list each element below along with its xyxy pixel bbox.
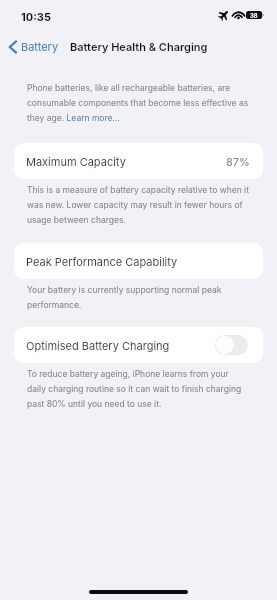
staticText: Battery Health & Charging [70, 40, 208, 53]
staticText: Your battery is currently supporting nor… [27, 281, 249, 311]
button[interactable]: Optimised Battery Charging toggle [215, 335, 248, 355]
staticText: Peak Performance Capability [26, 255, 178, 268]
staticText: Phone batteries, like all rechargeable b… [27, 79, 249, 124]
button[interactable]: Battery [0, 36, 65, 56]
staticText: Maximum Capacity [26, 155, 126, 168]
staticText: This is a measure of battery capacity re… [27, 181, 249, 226]
staticText: Optimised Battery Charging [26, 339, 170, 352]
staticText: To reduce battery ageing, iPhone learns … [27, 365, 249, 410]
button[interactable]: Maximum Capacity [14, 143, 263, 179]
staticText: 87% [226, 155, 250, 168]
staticText: 38 [250, 12, 258, 19]
button[interactable]: Peak Performance Capability [14, 243, 263, 279]
staticText: Battery [21, 40, 59, 53]
staticText: 10:35 [21, 10, 51, 23]
